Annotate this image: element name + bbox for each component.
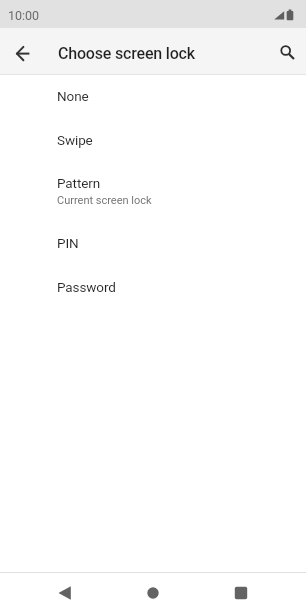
staticText: None <box>57 88 89 104</box>
staticText: Swipe <box>57 132 93 148</box>
button[interactable]: Swipe <box>0 118 306 162</box>
button[interactable] <box>7 35 39 67</box>
button[interactable]: Password <box>0 265 306 309</box>
button[interactable] <box>225 577 257 609</box>
button[interactable] <box>137 577 169 609</box>
staticText: Pattern <box>57 175 101 191</box>
button[interactable] <box>269 35 301 67</box>
staticText: PIN <box>57 235 79 251</box>
button[interactable]: None <box>0 75 306 118</box>
button[interactable]: PIN <box>0 221 306 265</box>
staticText: Password <box>57 279 116 295</box>
button[interactable] <box>49 577 81 609</box>
staticText: Current screen lock <box>57 194 152 207</box>
staticText: Choose screen lock <box>58 44 195 63</box>
staticText: 10:00 <box>8 8 40 23</box>
button[interactable]: Pattern <box>0 162 306 221</box>
